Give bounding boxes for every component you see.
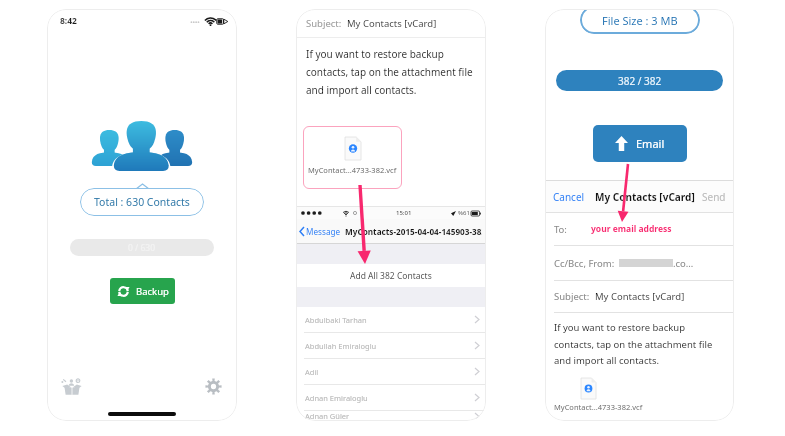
button[interactable]: Cancel [553,190,585,204]
staticText: MyContact...4733-382.vcf [308,165,397,175]
staticText: Cancel [553,190,585,204]
staticText: Subject: [554,290,590,303]
staticText: %61 [458,209,470,217]
staticText: My Contacts [vCard] [347,17,437,30]
staticText: Email [636,136,665,151]
button[interactable]: Add All 382 Contacts [296,264,486,287]
staticText: 0 / 630 [128,242,156,254]
staticText: To: [554,223,567,236]
staticText: My Contacts [vCard] [595,290,685,303]
button[interactable]: Message [300,226,341,237]
staticText: Subject: [306,17,342,30]
button[interactable]: Backup [110,278,175,304]
button[interactable]: Settings [202,375,225,398]
staticText: Cc/Bcc, From: [554,257,615,270]
staticText: My Contacts [vCard] [595,190,695,204]
button[interactable]: Restore contacts [59,375,85,398]
staticText: Abdulbaki Tarhan [305,315,367,325]
staticText: 8:42 [60,15,77,27]
button[interactable]: Abdullah Emiraloglu [296,333,486,358]
staticText: your email address [591,223,672,235]
staticText: 15:01 [396,209,412,217]
staticText: .co… [673,257,694,270]
staticText: Total : 630 Contacts [94,195,190,209]
staticText: MyContacts-2015-04-04-145903-382 [345,226,482,237]
staticText: If you want to restore backup contacts, … [306,47,476,97]
button[interactable]: Abdulbaki Tarhan [296,307,486,332]
button[interactable]: Email [593,125,687,162]
staticText: Add All 382 Contacts [350,270,432,282]
staticText: Message [306,226,341,237]
staticText: Adnan Güler [305,411,350,421]
staticText: Abdullah Emiraloglu [305,341,377,351]
button[interactable]: Send [702,190,726,204]
button[interactable]: MyContact...4733-382.vcf [303,126,402,189]
staticText: If you want to restore backup contacts, … [554,321,725,366]
staticText: File Size : 3 MB [602,13,678,28]
staticText: Send [702,190,726,204]
button[interactable]: Adnan Güler [296,411,486,421]
staticText: Adnan Emiraloglu [305,393,368,403]
button[interactable]: Adil [296,359,486,384]
staticText: Backup [136,285,169,298]
staticText: Adil [305,367,319,377]
staticText: MyContact...4733-382.vcf [554,402,643,412]
button[interactable]: Adnan Emiraloglu [296,385,486,410]
staticText: 382 / 382 [618,74,662,88]
